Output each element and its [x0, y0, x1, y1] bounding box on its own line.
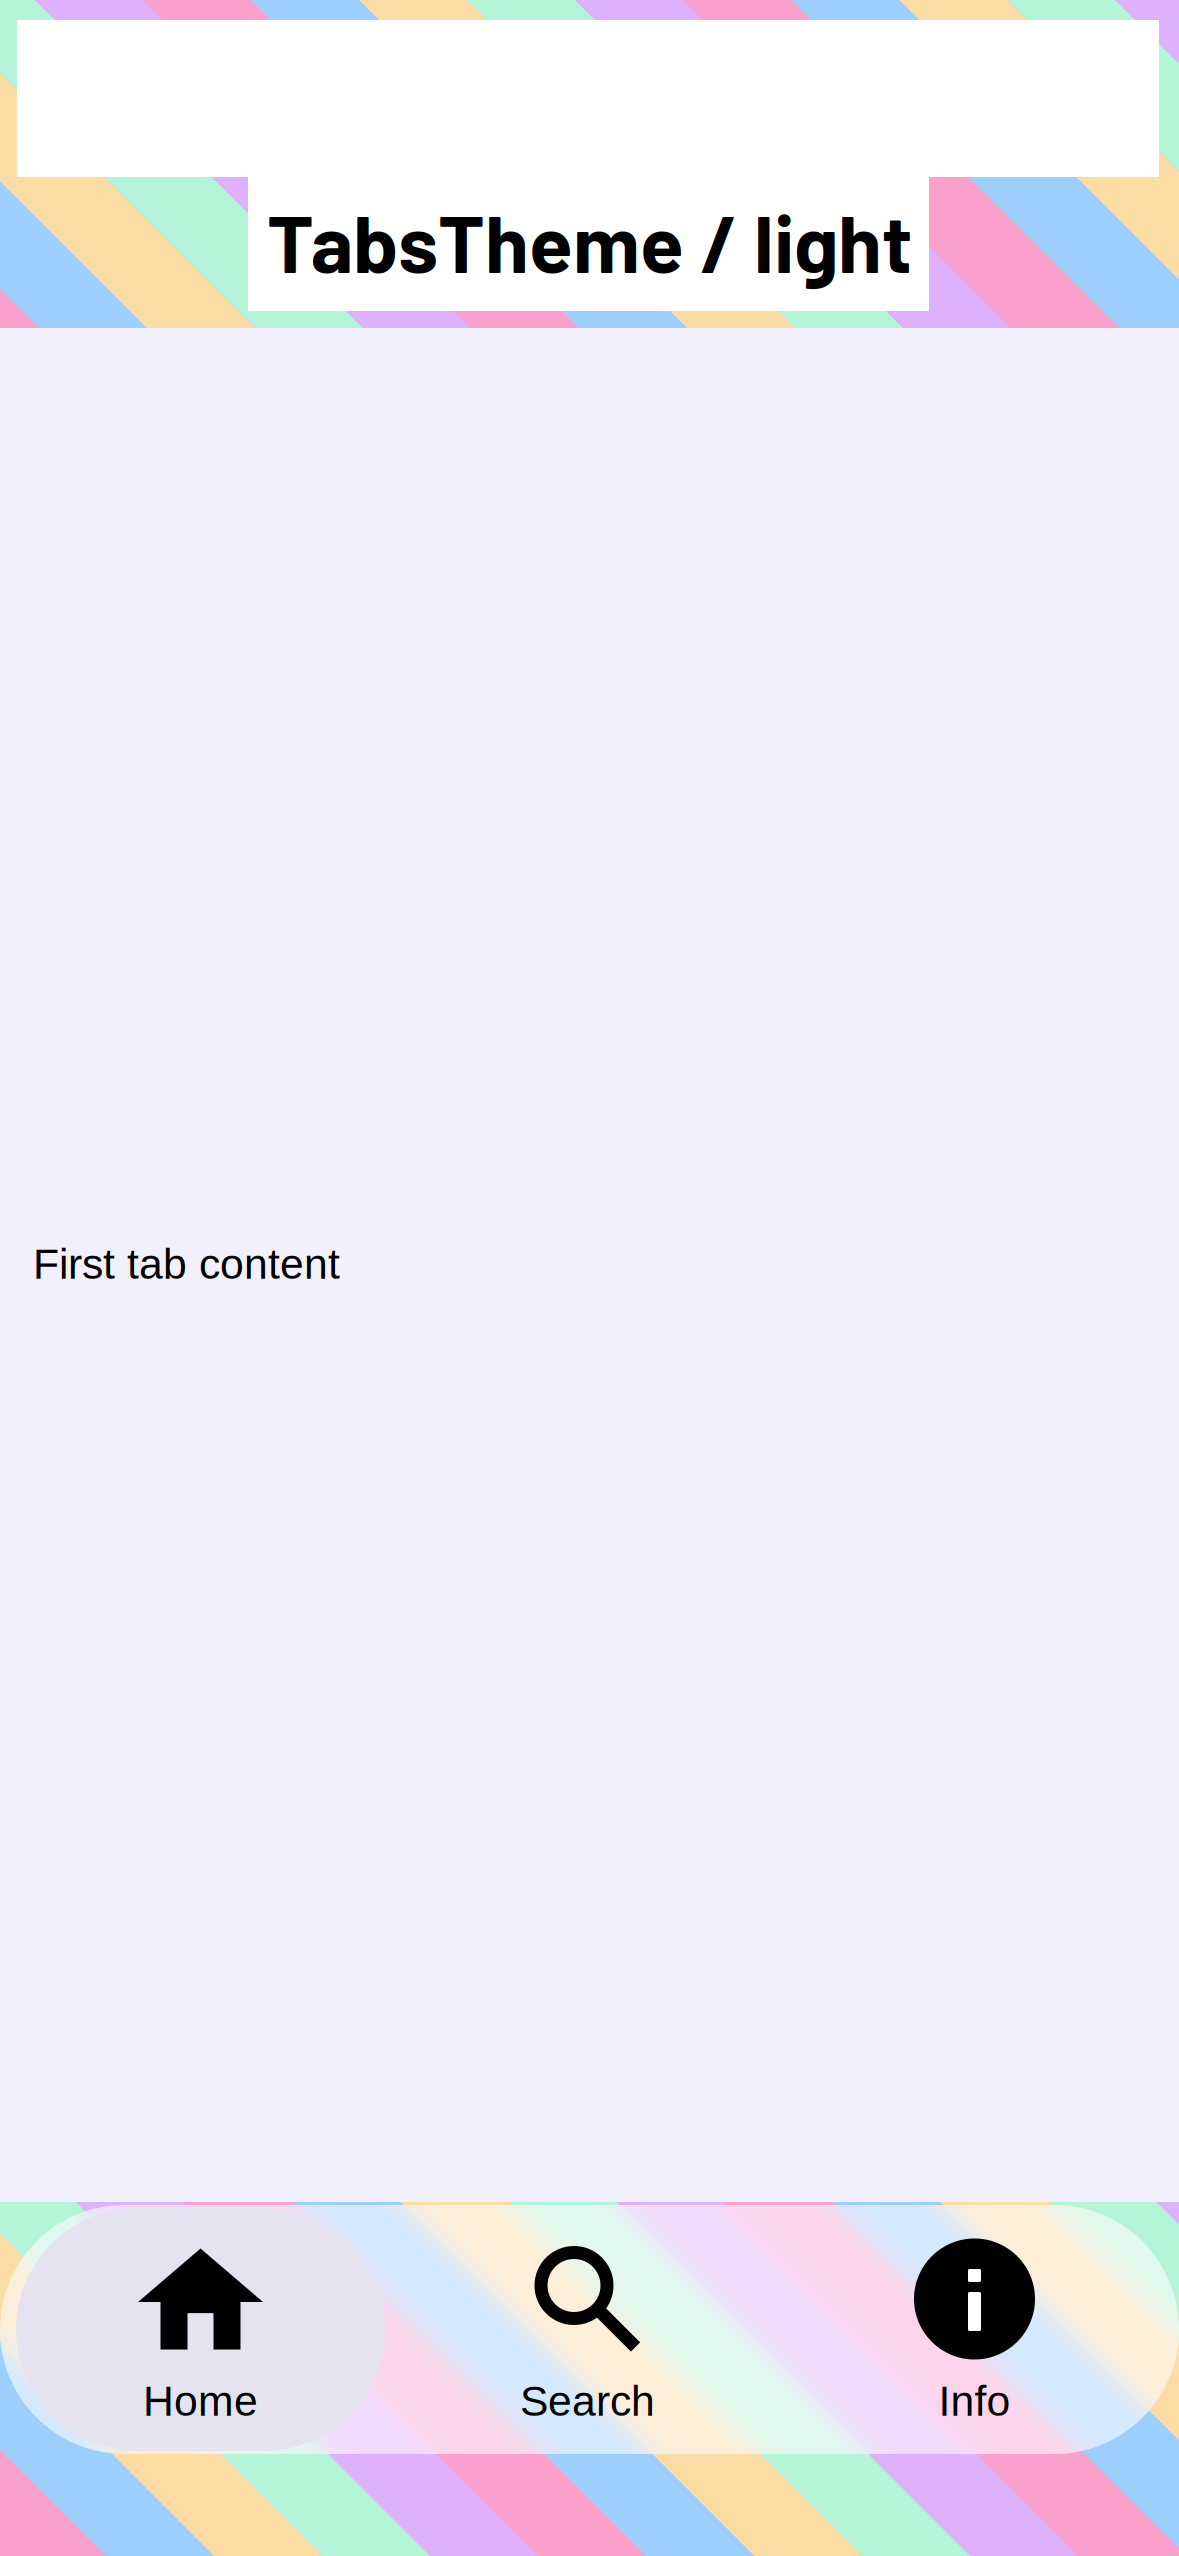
staticText: TabsTheme / light	[267, 193, 912, 289]
button[interactable]: Search	[403, 2208, 772, 2451]
button[interactable]: Info	[790, 2208, 1159, 2451]
staticText: Search	[520, 2377, 655, 2425]
staticText: First tab content	[33, 1240, 340, 1288]
button[interactable]: Home	[16, 2208, 385, 2451]
staticText: Home	[143, 2377, 258, 2425]
staticText: Info	[938, 2377, 1010, 2425]
